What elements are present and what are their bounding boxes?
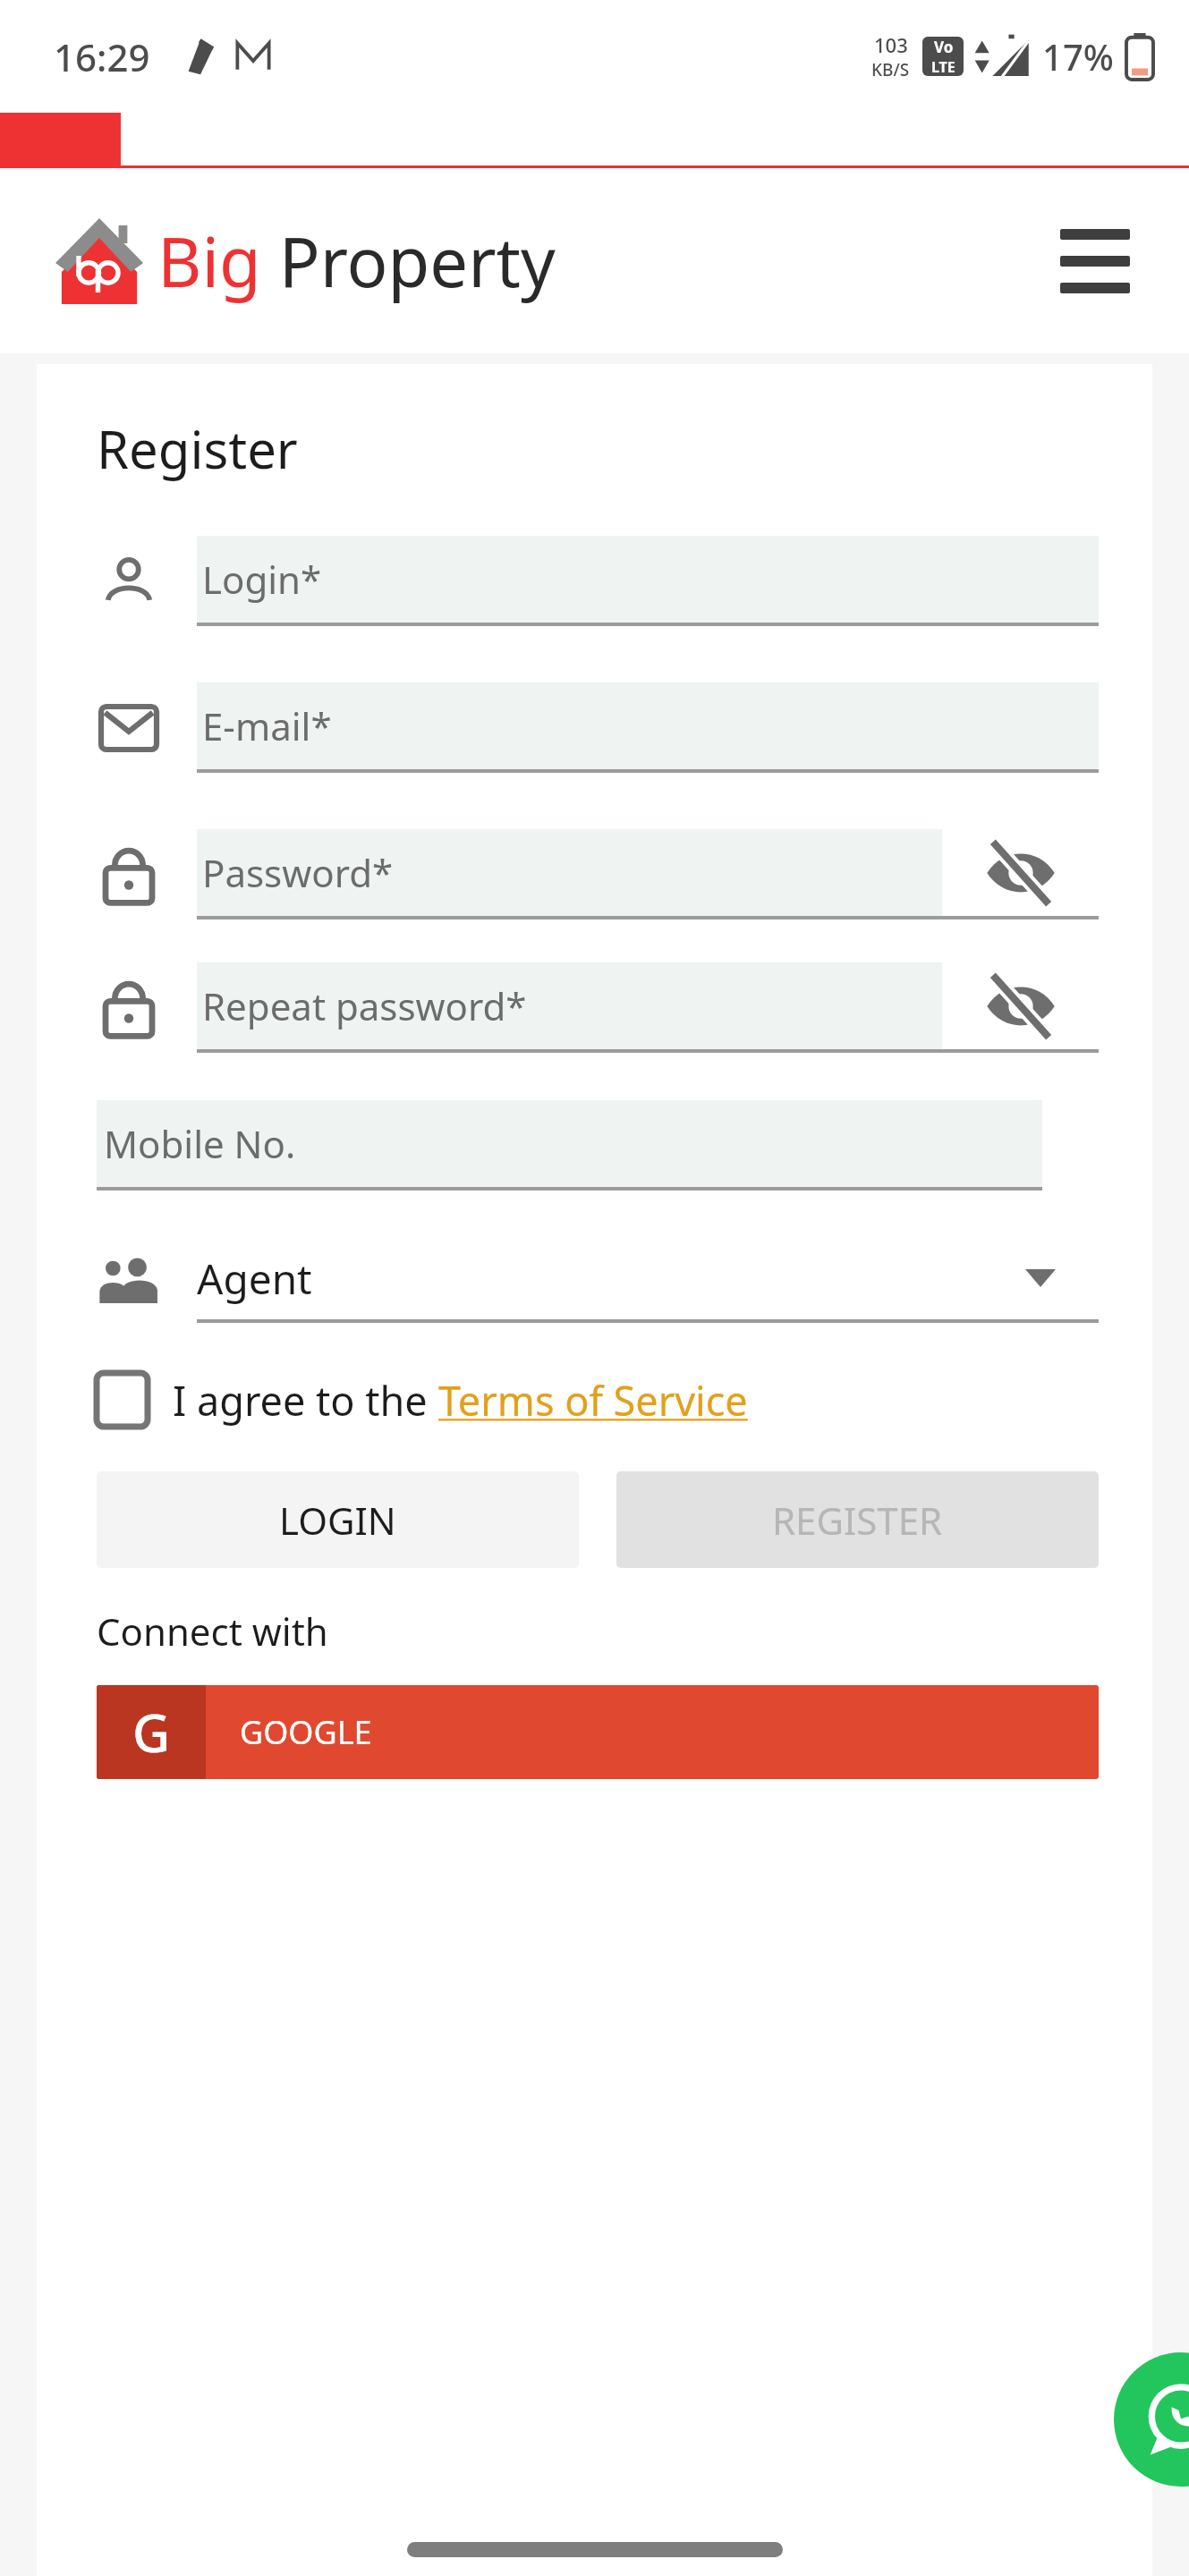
button[interactable]: G (97, 1685, 1099, 1779)
button[interactable]: Login* (197, 536, 1099, 623)
staticText: 17% (1042, 32, 1114, 80)
button[interactable]: Toggle password visibility (942, 962, 1099, 1049)
staticText: Big (157, 215, 261, 308)
staticText: LOGIN (279, 1495, 396, 1546)
staticText: 103 (874, 31, 908, 58)
staticText: REGISTER (772, 1495, 943, 1546)
staticText: Login* (202, 554, 322, 605)
staticText: LTE (931, 57, 955, 76)
button[interactable]: Open navigation menu (1041, 208, 1149, 315)
staticText: I agree to the (173, 1373, 438, 1428)
staticText: Connect with (97, 1606, 328, 1657)
button[interactable]: Chat on WhatsApp (1114, 2352, 1189, 2487)
staticText: KB/S (871, 58, 910, 81)
button[interactable]: I agree to the (97, 1357, 1099, 1443)
button[interactable]: E-mail* (197, 682, 1099, 769)
button[interactable]: REGISTER (616, 1471, 1099, 1568)
staticText: Register (97, 413, 298, 484)
staticText: Terms of Service (438, 1373, 748, 1428)
button[interactable]: Agent (97, 1237, 1099, 1323)
staticText: Agent (197, 1250, 312, 1307)
staticText: Repeat password* (202, 980, 527, 1031)
staticText: Vo (934, 37, 954, 57)
staticText: Property (261, 215, 556, 308)
button[interactable]: Repeat password* (197, 962, 942, 1049)
staticText: E-mail* (202, 700, 332, 751)
button[interactable]: Mobile No. (97, 1100, 1042, 1187)
button[interactable]: Toggle password visibility (942, 829, 1099, 916)
button[interactable]: LOGIN (97, 1471, 579, 1568)
staticText: Password* (202, 847, 394, 898)
staticText: 16:29 (54, 31, 150, 82)
button[interactable]: Password* (197, 829, 942, 916)
staticText: Mobile No. (104, 1118, 296, 1169)
staticText: GOOGLE (240, 1710, 372, 1754)
staticText: G (132, 1697, 171, 1767)
